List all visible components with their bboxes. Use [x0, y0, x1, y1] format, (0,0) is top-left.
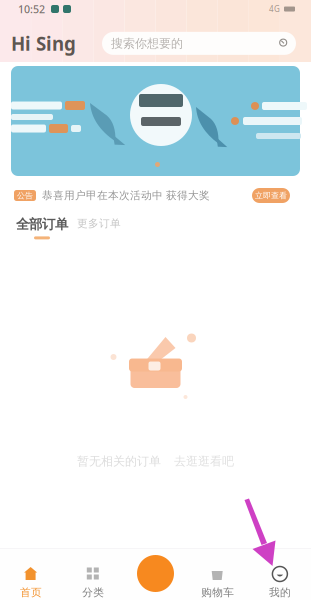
button[interactable]: 搜索你想要的 [102, 32, 296, 55]
button[interactable]: 更多订单 [68, 216, 121, 230]
staticText: 分类 [82, 586, 104, 599]
button[interactable]: 分类 [62, 548, 124, 600]
button[interactable]: 我的 [249, 548, 311, 600]
button[interactable]: 发布 [124, 548, 187, 600]
staticText: 搜索你想要的 [111, 36, 183, 51]
button[interactable]: 全部订单 [16, 216, 68, 239]
button[interactable]: 首页 [0, 548, 62, 600]
staticText: 去逛逛看吧 [174, 454, 234, 469]
staticText: 4G [269, 4, 280, 14]
staticText: 立即查看 [255, 191, 287, 200]
staticText: 暂无相关的订单 [77, 454, 161, 469]
staticText: 公告 [17, 191, 33, 200]
button[interactable]: 公告 [0, 183, 311, 208]
staticText: 全部订单 [16, 216, 68, 232]
staticText: 我的 [269, 586, 291, 599]
staticText: 更多订单 [77, 217, 121, 230]
staticText: 10:52 [18, 2, 45, 16]
staticText: 购物车 [201, 586, 234, 599]
staticText: 首页 [20, 586, 42, 599]
staticText: 恭喜用户甲在本次活动中 获得大奖 [42, 189, 210, 202]
button[interactable]: 购物车 [187, 548, 249, 600]
staticText: Hi Sing [11, 31, 76, 56]
